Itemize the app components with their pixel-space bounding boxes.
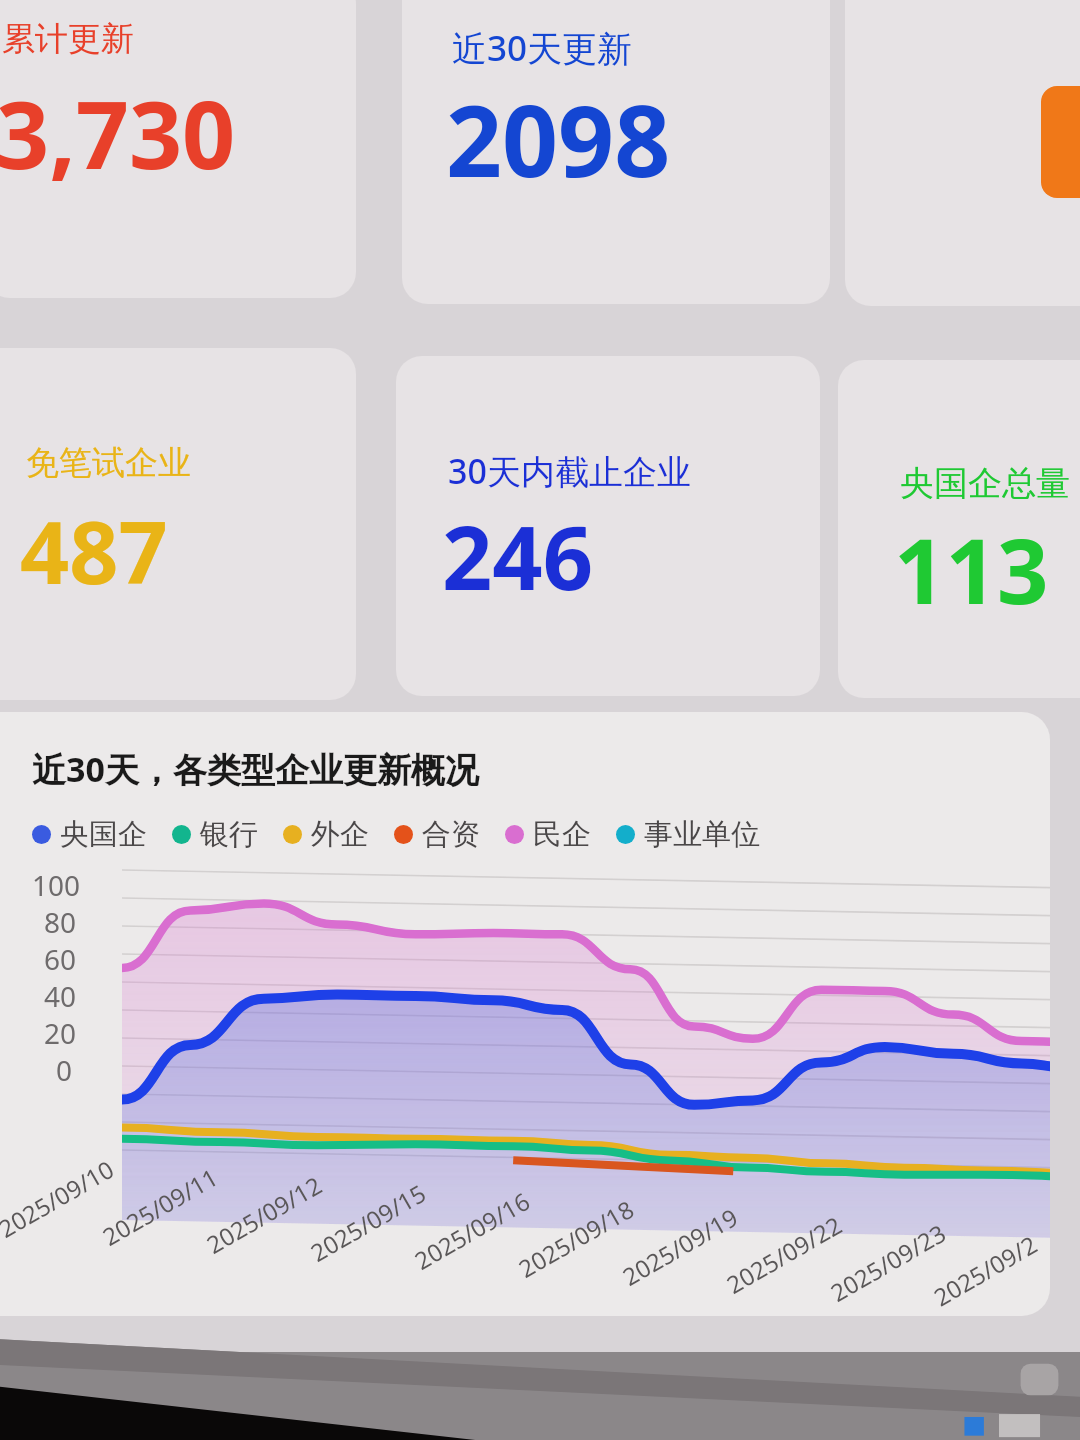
staticText: 近30天，各类型企业更新概况 xyxy=(32,746,479,792)
staticText: 2025/09/18 xyxy=(512,1192,640,1285)
staticText: 外企 xyxy=(311,816,369,853)
staticText: 246 xyxy=(442,496,594,616)
staticText: 487 xyxy=(20,492,168,609)
staticText: 民企 xyxy=(533,816,591,853)
staticText: 30天内截止企业 xyxy=(448,448,691,494)
staticText: 2025/09/2 xyxy=(927,1228,1043,1313)
staticText: 2025/09/22 xyxy=(720,1208,848,1301)
button[interactable]: 事业单位 xyxy=(616,816,760,853)
staticText: 2025/09/19 xyxy=(616,1200,744,1293)
staticText: 央国企 xyxy=(60,816,147,853)
button[interactable]: 央国企 xyxy=(32,816,147,853)
staticText: 2025/09/10 xyxy=(0,1152,120,1245)
staticText: 3,730 xyxy=(0,70,236,197)
staticText: 近30天更新 xyxy=(452,24,633,72)
staticText: 银行 xyxy=(200,816,258,853)
staticText: 100 xyxy=(32,866,81,904)
staticText: 60 xyxy=(44,940,77,978)
staticText: 2025/09/12 xyxy=(200,1168,328,1261)
button[interactable]: 央国企总量 xyxy=(838,360,1080,698)
button[interactable]: 外企 xyxy=(283,816,369,853)
button[interactable]: 30天内截止企业 xyxy=(396,356,820,696)
button[interactable]: 民企 xyxy=(505,816,591,853)
button[interactable]: 近30天，各类型企业更新概况 xyxy=(0,712,1050,1316)
button[interactable]: 统计图标 xyxy=(845,0,1080,306)
button[interactable]: 近30天更新 xyxy=(402,0,830,304)
staticText: 20 xyxy=(44,1014,77,1052)
staticText: 2025/09/16 xyxy=(408,1184,536,1277)
staticText: 2025/09/11 xyxy=(96,1160,224,1253)
staticText: 0 xyxy=(56,1051,73,1089)
button[interactable]: 累计更新 xyxy=(0,0,356,298)
staticText: 2098 xyxy=(446,72,671,205)
staticText: 113 xyxy=(894,508,1049,631)
staticText: 累计更新 xyxy=(2,18,134,60)
staticText: 事业单位 xyxy=(644,816,760,853)
staticText: 央国企总量 xyxy=(900,462,1070,505)
staticText: 80 xyxy=(44,903,77,941)
staticText: 2025/09/15 xyxy=(304,1176,432,1269)
staticText: 合资 xyxy=(422,816,480,853)
staticText: 40 xyxy=(44,977,77,1015)
staticText: 2025/09/23 xyxy=(824,1216,952,1309)
button[interactable]: 合资 xyxy=(394,816,480,853)
staticText: 免笔试企业 xyxy=(26,442,191,484)
other: 统计图标 xyxy=(1041,86,1080,198)
button[interactable]: 银行 xyxy=(172,816,258,853)
button[interactable]: 免笔试企业 xyxy=(0,348,356,700)
